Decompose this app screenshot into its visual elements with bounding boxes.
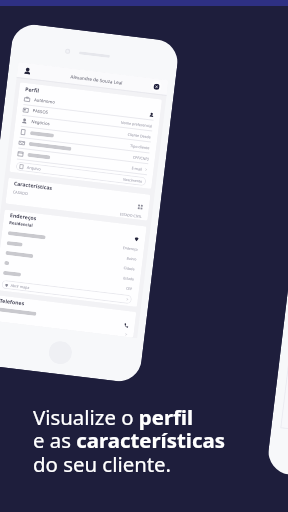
button[interactable]: Arquivo [15, 161, 147, 186]
staticText: Perfil [25, 85, 40, 94]
staticText: PASSOS [32, 108, 49, 116]
button[interactable]: Fechar [150, 80, 162, 92]
button[interactable]: Autônomo [23, 94, 155, 120]
staticText: Estado [123, 275, 135, 281]
button[interactable]: Tipo cliente [20, 127, 151, 152]
staticText: Endereços [10, 211, 37, 221]
staticText: Residencial [9, 220, 33, 229]
button[interactable]: CASADO [12, 186, 144, 213]
button[interactable] [0, 303, 129, 331]
staticText: CASADO [13, 189, 29, 196]
button[interactable]: Negócios [21, 116, 152, 141]
staticText: Telefones [0, 296, 25, 306]
staticText: E-mail [131, 165, 143, 172]
staticText: Alexandre de Souza Leal [70, 73, 123, 86]
staticText: Bairro [126, 255, 137, 262]
staticText: Características [13, 179, 53, 191]
button[interactable]: PASSOS [22, 105, 153, 131]
staticText: CPF/CNPJ [133, 154, 149, 161]
staticText: Arquivo [27, 165, 41, 171]
button[interactable]: CPF/CNPJ [18, 138, 149, 163]
staticText: Cliente Desde [127, 132, 152, 139]
staticText: Abrir mapa [10, 283, 30, 290]
button[interactable]: Perfil do cliente [22, 66, 33, 77]
button[interactable]: Home [48, 340, 73, 365]
button[interactable]: Abrir mapa [1, 280, 132, 304]
staticText: Visualize o perfil e as características … [33, 403, 225, 478]
staticText: Nome preferencial [121, 120, 153, 129]
staticText: Negócios [31, 119, 51, 127]
staticText: CEP [126, 286, 133, 291]
button[interactable]: Residencial [8, 218, 140, 244]
staticText: Endereço [123, 245, 138, 252]
staticText: ESTADO CIVIL [120, 211, 142, 219]
staticText: Nascimento [123, 176, 143, 184]
button[interactable]: E-mail [17, 149, 148, 174]
staticText: Tipo cliente [130, 143, 150, 150]
staticText: Autônomo [34, 97, 55, 106]
staticText: Cidade [123, 265, 136, 271]
